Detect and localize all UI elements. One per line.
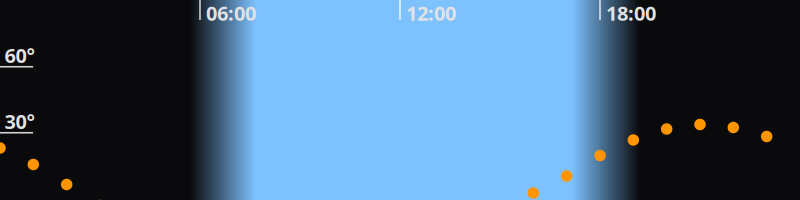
staticText: 30° [4, 108, 34, 135]
button[interactable]: 24-hour temperature forecast chart [0, 0, 800, 200]
staticText: 60° [4, 42, 34, 69]
staticText: 12:00 [406, 0, 456, 26]
staticText: 06:00 [206, 0, 256, 26]
staticText: 18:00 [606, 0, 656, 26]
